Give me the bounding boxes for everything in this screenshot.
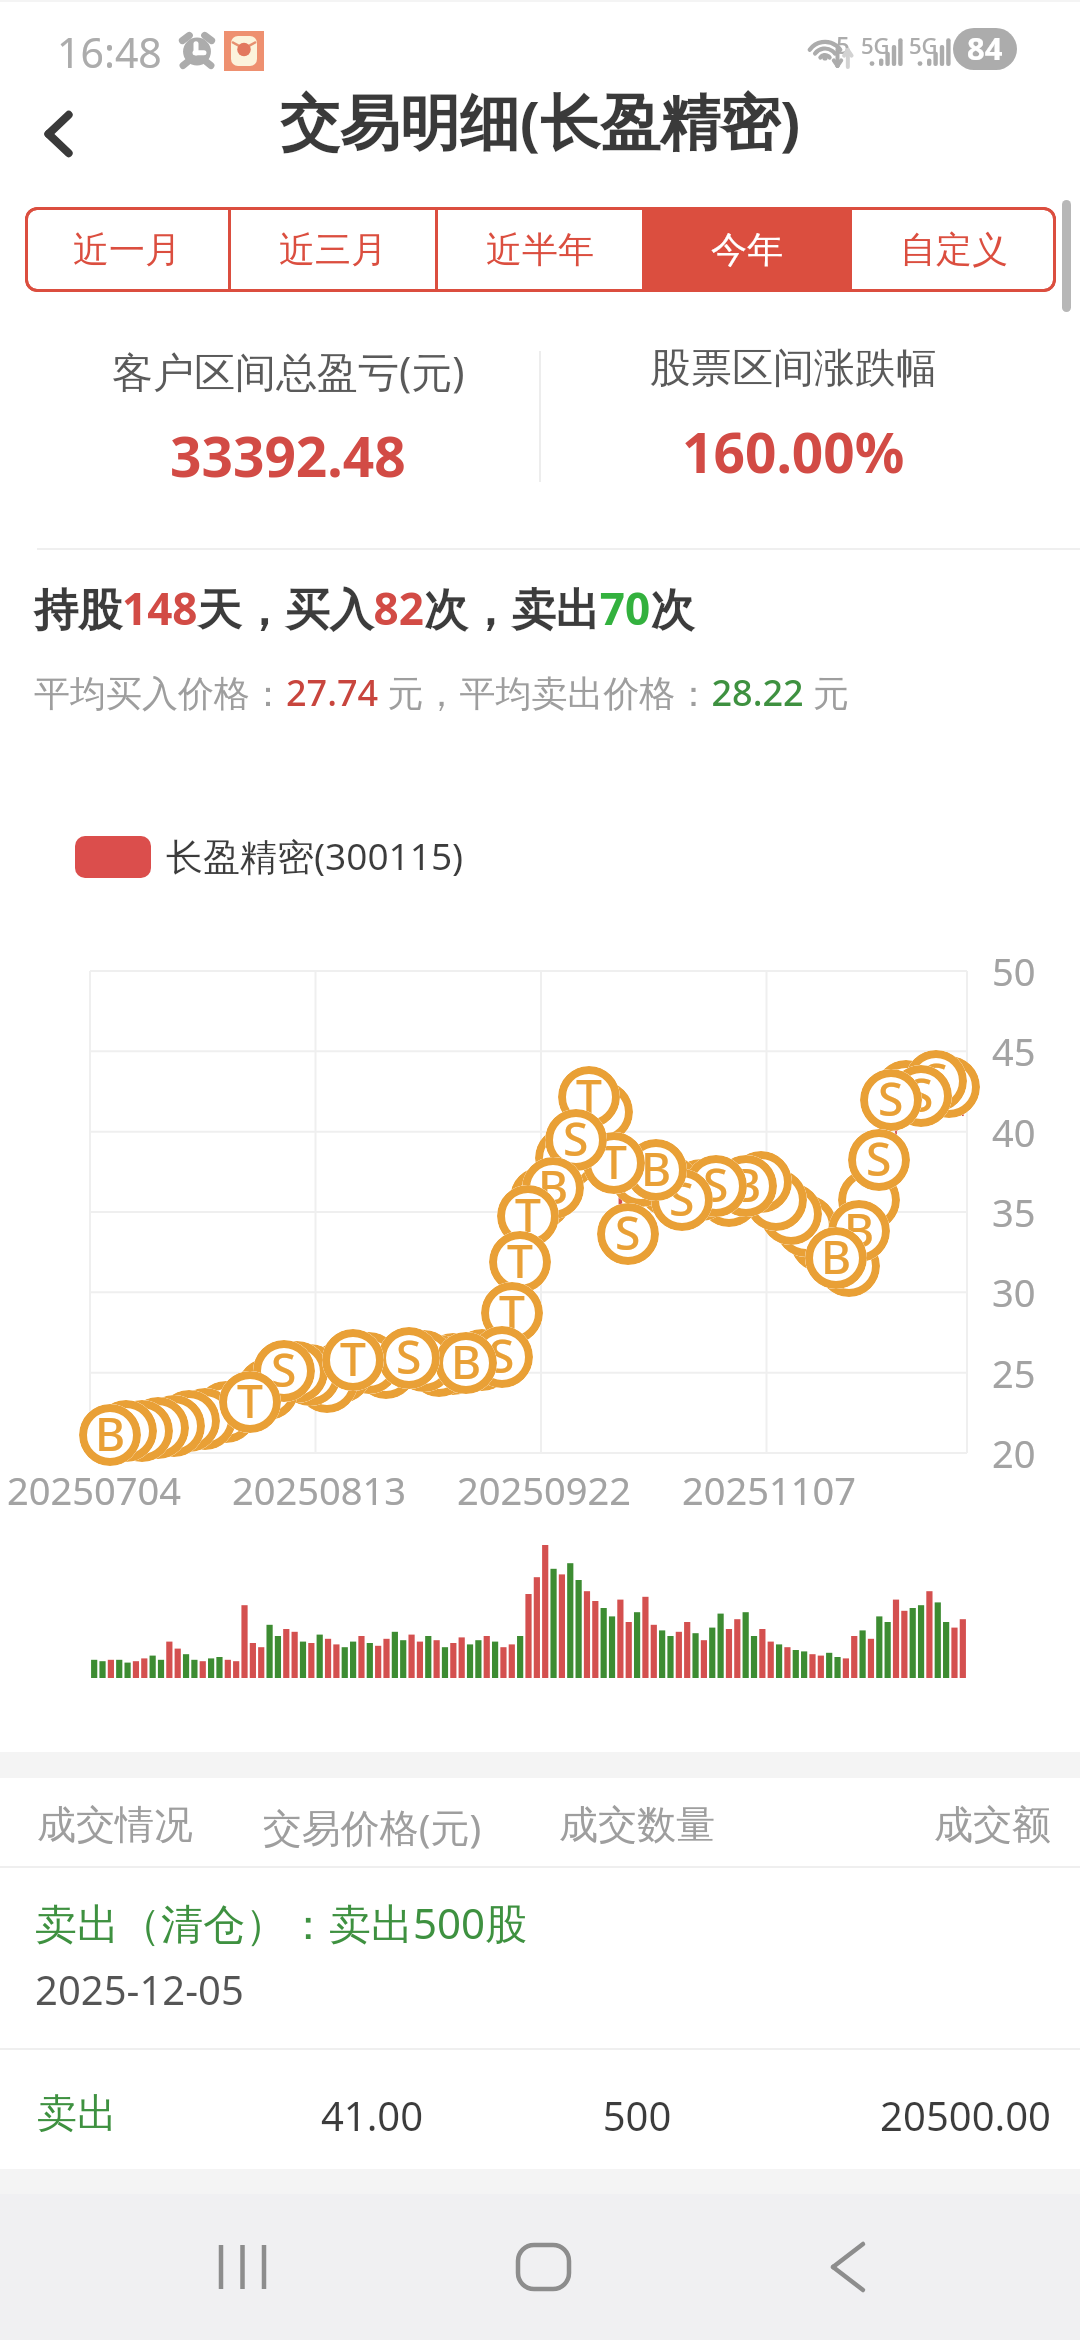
staticText: 40	[992, 1106, 1036, 1158]
staticText: 20250922	[434, 1464, 654, 1516]
staticText: 45	[992, 1025, 1036, 1077]
staticText: 16:48	[57, 24, 162, 80]
staticText: 近半年	[486, 227, 594, 272]
button[interactable]: 卖出	[0, 2050, 1080, 2170]
staticText: 成交情况	[37, 1800, 193, 1849]
staticText: S	[396, 1327, 422, 1387]
staticText: 5G	[909, 30, 938, 60]
staticText: T	[576, 1066, 602, 1126]
button[interactable]: 近半年	[438, 207, 642, 292]
button[interactable]: Home	[483, 2194, 603, 2340]
staticText: 长盈精密(300115)	[166, 830, 464, 881]
button[interactable]: 卖出（清仓）：卖出500股	[0, 1868, 1080, 2048]
staticText: 35	[992, 1186, 1036, 1238]
staticText: T	[515, 1185, 541, 1245]
staticText: 30	[992, 1266, 1036, 1318]
button[interactable]: 自定义	[852, 207, 1056, 292]
button[interactable]: Back	[788, 2194, 908, 2340]
staticText: 今年	[711, 227, 783, 272]
staticText: 20250704	[0, 1464, 204, 1516]
staticText: 50	[992, 945, 1036, 997]
staticText: S	[908, 1065, 934, 1125]
staticText: 客户区间总盈亏(元)	[112, 343, 465, 399]
staticText: T	[499, 1282, 525, 1342]
staticText: S	[489, 1326, 515, 1386]
button[interactable]: Recent apps	[184, 2194, 304, 2340]
staticText: 41.00	[172, 2088, 572, 2142]
staticText: S	[615, 1203, 641, 1263]
staticText: B	[844, 1200, 875, 1260]
staticText: 500	[437, 2088, 837, 2142]
staticText: 成交额	[651, 1800, 1051, 1849]
staticText: 持股148天，买入82次，卖出70次	[34, 578, 695, 638]
button[interactable]: 近三月	[231, 207, 435, 292]
staticText: 交易明细(长盈精密)	[0, 80, 1080, 162]
staticText: B	[538, 1157, 569, 1217]
button[interactable]: Back	[0, 86, 120, 182]
staticText: 160.00%	[682, 414, 905, 489]
staticText: 5G	[861, 30, 890, 60]
staticText: 20250813	[209, 1464, 429, 1516]
staticText: 卖出（清仓）：卖出500股	[35, 1894, 528, 1951]
button[interactable]: 近一月	[25, 207, 228, 292]
staticText: 自定义	[900, 227, 1008, 272]
staticText: 5	[836, 28, 850, 61]
staticText: B	[731, 1155, 762, 1215]
staticText: S	[923, 1050, 949, 1110]
staticText: B	[821, 1227, 852, 1287]
staticText: S	[271, 1340, 297, 1400]
staticText: 20500.00	[651, 2088, 1051, 2142]
button[interactable]: 今年	[645, 207, 849, 292]
staticText: 股票区间涨跌幅	[650, 343, 937, 395]
staticText: B	[451, 1332, 482, 1392]
staticText: 近一月	[73, 227, 181, 272]
staticText: 20	[992, 1427, 1036, 1479]
staticText: 84	[967, 28, 1003, 69]
staticText: S	[703, 1155, 729, 1215]
staticText: 2025-12-05	[35, 1962, 244, 2016]
staticText: T	[237, 1371, 263, 1431]
staticText: 平均买入价格：27.74 元，平均卖出价格：28.22 元	[34, 668, 850, 717]
staticText: B	[641, 1139, 672, 1199]
staticText: S	[669, 1169, 695, 1229]
staticText: B	[95, 1404, 126, 1464]
staticText: T	[507, 1231, 533, 1291]
staticText: 交易价格(元)	[172, 1800, 572, 1853]
staticText: S	[866, 1129, 892, 1189]
staticText: 成交数量	[437, 1800, 837, 1849]
staticText: S	[563, 1109, 589, 1169]
staticText: 卖出	[37, 2088, 117, 2138]
staticText: T	[601, 1132, 627, 1192]
staticText: 33392.48	[170, 418, 406, 493]
staticText: S	[878, 1069, 904, 1129]
staticText: 25	[992, 1347, 1036, 1399]
staticText: 近三月	[279, 227, 387, 272]
staticText: 20251107	[659, 1464, 879, 1516]
staticText: T	[340, 1329, 366, 1389]
